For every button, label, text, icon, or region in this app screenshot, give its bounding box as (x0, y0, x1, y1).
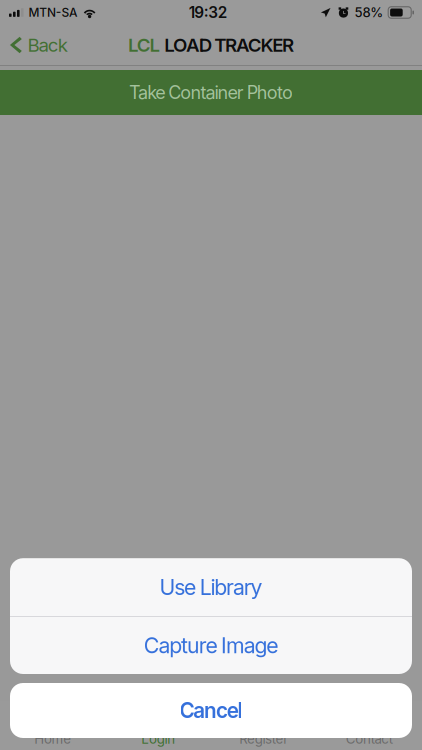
staticText: Home (34, 731, 71, 747)
staticText: 58% (355, 5, 383, 20)
staticText: Contact (346, 731, 393, 747)
button[interactable]: Cancel (10, 683, 412, 738)
staticText: 19:32 (189, 3, 228, 22)
staticText: Back (27, 34, 68, 56)
staticText: MTN-SA (29, 5, 78, 20)
staticText: Capture Image (144, 633, 278, 658)
button[interactable]: Home (0, 701, 105, 750)
staticText: LOAD TRACKER (160, 34, 294, 56)
staticText: Cancel (179, 698, 242, 723)
button[interactable]: Login (105, 701, 211, 750)
button[interactable]: Capture Image (10, 617, 412, 674)
button[interactable]: Use Library (10, 558, 412, 616)
staticText: LCL (128, 34, 160, 56)
staticText: Login (141, 731, 175, 747)
staticText: Take Container Photo (129, 82, 293, 103)
button[interactable]: Back (0, 27, 76, 63)
button[interactable]: Contact (316, 701, 422, 750)
button[interactable]: Register (211, 701, 316, 750)
button[interactable]: Take Container Photo (0, 70, 422, 115)
staticText: Register (239, 731, 288, 747)
staticText: Use Library (159, 574, 262, 600)
